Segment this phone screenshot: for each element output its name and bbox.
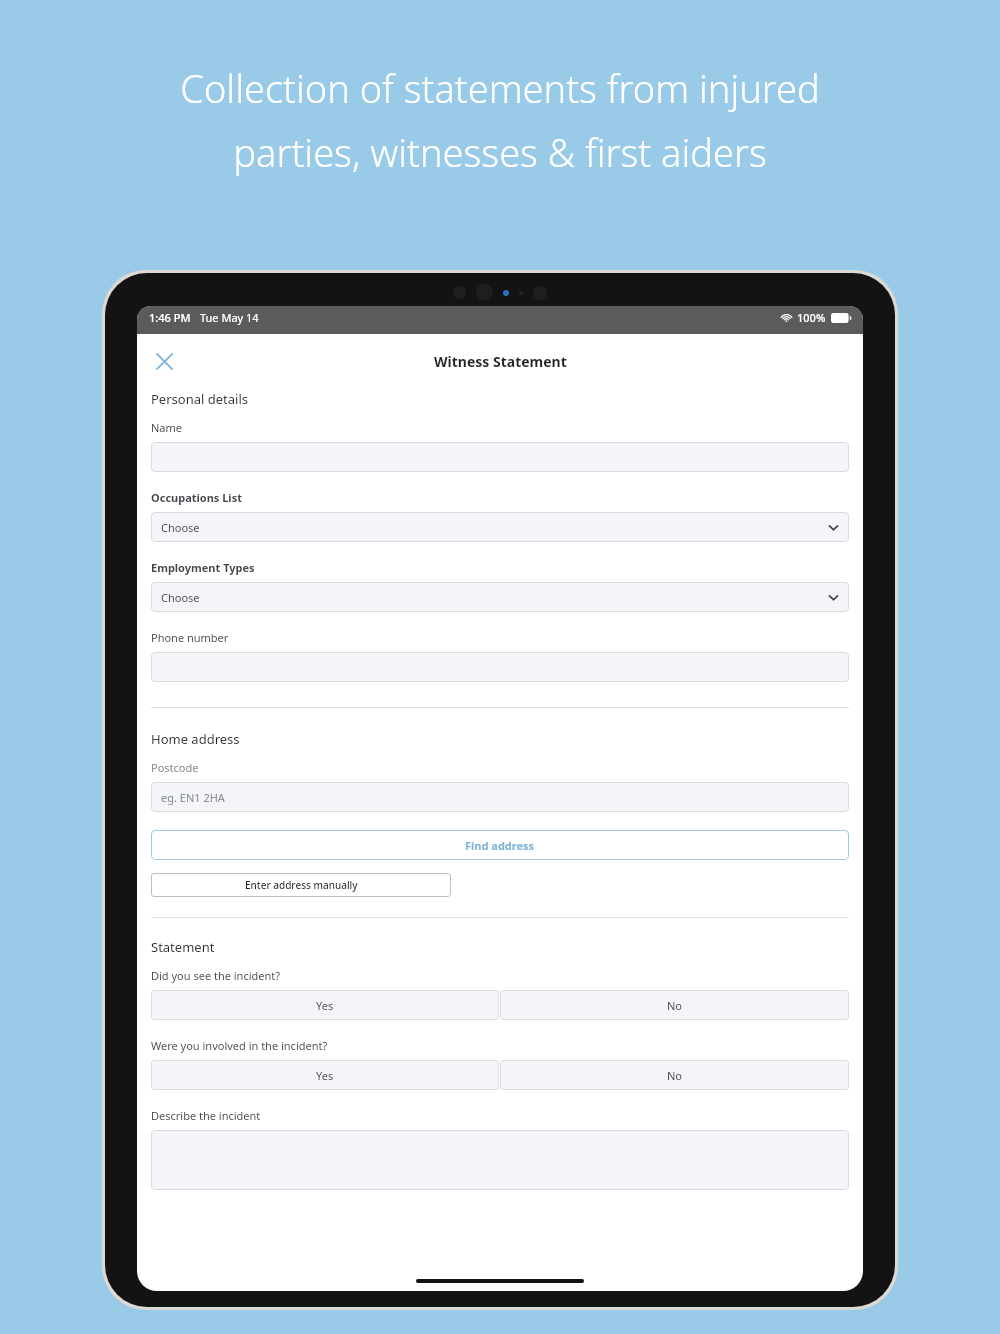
staticText: Yes (316, 998, 334, 1013)
staticText: Find address (465, 838, 535, 853)
staticText: No (667, 1068, 683, 1083)
staticText: Choose (161, 590, 200, 605)
staticText: 1:46 PM (149, 310, 191, 325)
staticText: Choose (161, 520, 200, 535)
button[interactable]: Choose (151, 582, 849, 612)
button[interactable]: Find address (151, 830, 849, 860)
staticText: No (667, 998, 683, 1013)
staticText: Tue May 14 (200, 310, 259, 325)
staticText: Employment Types (151, 560, 255, 575)
staticText: eg. EN1 2HA (161, 790, 225, 805)
button[interactable]: No (500, 1060, 849, 1090)
staticText: Did you see the incident? (151, 968, 281, 983)
staticText: Occupations List (151, 490, 242, 505)
staticText: Witness Statement (434, 352, 567, 371)
staticText: Name (151, 420, 183, 435)
staticText: Statement (151, 938, 215, 956)
button[interactable] (151, 442, 849, 472)
staticText: Were you involved in the incident? (151, 1038, 328, 1053)
button[interactable]: Choose (151, 512, 849, 542)
staticText: Personal details (151, 390, 248, 408)
button[interactable] (151, 652, 849, 682)
staticText: Postcode (151, 760, 199, 775)
button[interactable]: Enter address manually (151, 873, 451, 897)
button[interactable]: No (500, 990, 849, 1020)
button[interactable] (151, 1130, 849, 1190)
staticText: Enter address manually (245, 878, 358, 892)
staticText: Yes (316, 1068, 334, 1083)
staticText: 100% (797, 310, 826, 325)
staticText: Collection of statements from injured (180, 62, 820, 114)
staticText: Describe the incident (151, 1108, 261, 1123)
button[interactable]: Close (145, 342, 183, 380)
staticText: Home address (151, 730, 240, 748)
button[interactable]: Yes (151, 1060, 499, 1090)
button[interactable]: Yes (151, 990, 499, 1020)
button[interactable]: eg. EN1 2HA (151, 782, 849, 812)
staticText: Phone number (151, 630, 229, 645)
staticText: parties, witnesses & first aiders (233, 126, 767, 178)
